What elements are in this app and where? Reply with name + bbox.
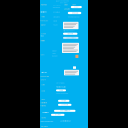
- staticText: Assign: [61, 100, 66, 102]
- button[interactable]: Archive: [51, 114, 64, 116]
- staticText: All regions: [53, 16, 60, 18]
- staticText: Up 12% QoQ: [56, 82, 64, 84]
- staticText: Agenda: [40, 4, 46, 6]
- staticText: Last edited today: [60, 120, 71, 122]
- staticText: See breakdown: [56, 93, 68, 94]
- button[interactable]: Schedule: [58, 104, 71, 106]
- staticText: Next: [41, 99, 44, 100]
- staticText: Operations: [59, 2, 67, 4]
- staticText: Quarterly Review: [55, 0, 68, 2]
- staticText: Attached report: [63, 30, 74, 32]
- staticText: Metrics: [41, 72, 47, 73]
- staticText: Export: [74, 6, 79, 8]
- staticText: Stable: [53, 20, 57, 22]
- staticText: Pipeline healthy: [56, 86, 66, 88]
- staticText: Sales: [41, 84, 45, 86]
- staticText: Reviewed weekly: [67, 16, 79, 18]
- staticText: Add comment: [66, 37, 75, 39]
- staticText: Scope: [41, 33, 46, 35]
- staticText: Archive: [55, 114, 61, 116]
- button[interactable]: View detail: [68, 12, 81, 14]
- staticText: Highlights: [40, 11, 47, 13]
- staticText: Open: [72, 4, 76, 6]
- button[interactable]: Assign: [58, 100, 69, 102]
- staticText: Status: [64, 4, 68, 6]
- staticText: Details: [59, 89, 63, 91]
- staticText: Conversion: [40, 76, 49, 77]
- staticText: Notes: [41, 16, 45, 18]
- staticText: Forecast: [40, 20, 47, 22]
- staticText: Action items: [40, 102, 47, 104]
- button[interactable]: Export: [71, 6, 82, 8]
- staticText: Summary: [42, 112, 49, 113]
- staticText: View detail: [71, 12, 77, 14]
- button[interactable]: Add comment: [63, 37, 78, 39]
- staticText: Growth up: [53, 11, 60, 13]
- button[interactable]: Details: [56, 89, 66, 91]
- staticText: Owner: [52, 50, 57, 52]
- staticText: Risks: [40, 35, 44, 37]
- staticText: Open file: [67, 33, 73, 35]
- button[interactable]: Share with team: [54, 110, 75, 112]
- staticText: Timeline: [40, 40, 45, 42]
- staticText: Churn: [40, 79, 45, 81]
- staticText: Revenue: [53, 6, 60, 8]
- staticText: Key metrics: [53, 4, 61, 6]
- staticText: Follow up: [40, 105, 46, 107]
- staticText: Closing: [41, 117, 46, 119]
- button[interactable]: Open file: [63, 33, 77, 35]
- staticText: Schedule: [61, 104, 68, 106]
- staticText: Updated: [64, 8, 70, 10]
- staticText: Version 3: [40, 126, 47, 127]
- staticText: Share with team: [60, 110, 70, 112]
- staticText: Costs: [41, 90, 45, 92]
- staticText: Owner: [41, 24, 46, 26]
- staticText: Approved by ops: [40, 121, 53, 122]
- staticText: Cost: [40, 54, 43, 56]
- staticText: Team: [53, 24, 57, 26]
- staticText: Status: [52, 52, 56, 54]
